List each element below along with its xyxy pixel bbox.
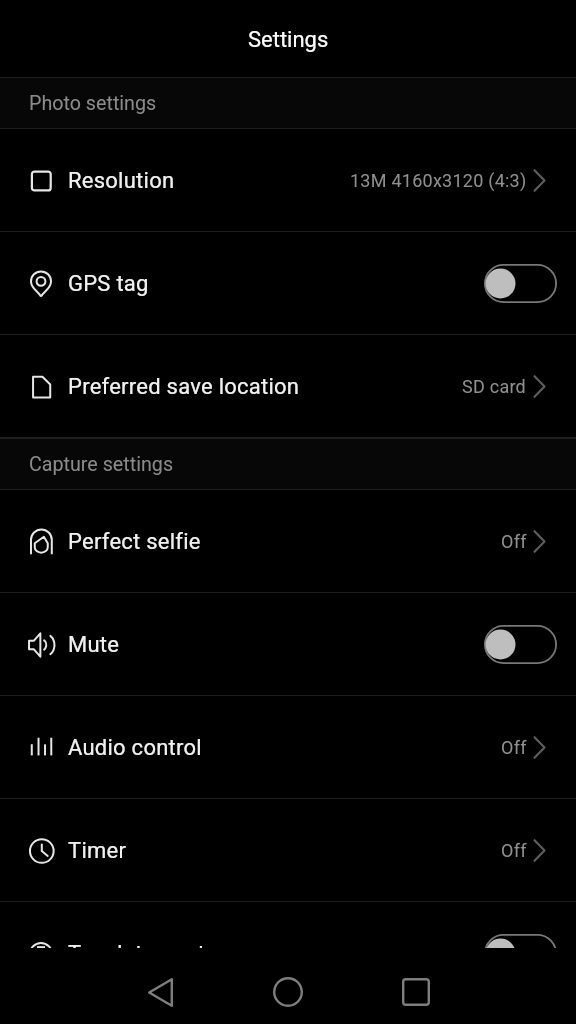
button[interactable]: Recent apps bbox=[384, 960, 448, 1024]
button[interactable]: Toggle bbox=[484, 264, 557, 303]
button[interactable]: Toggle bbox=[484, 934, 557, 948]
button[interactable]: Preferred save location bbox=[0, 335, 576, 438]
button[interactable]: Back bbox=[128, 960, 192, 1024]
button[interactable]: Perfect selfie bbox=[0, 490, 576, 593]
button[interactable]: GPS tag bbox=[0, 232, 576, 335]
staticText: Touch to capture bbox=[68, 941, 237, 948]
staticText: GPS tag bbox=[68, 271, 149, 297]
staticText: Mute bbox=[68, 632, 120, 658]
staticText: Preferred save location bbox=[68, 374, 300, 400]
staticText: Photo settings bbox=[29, 92, 157, 115]
button[interactable]: Toggle bbox=[484, 625, 557, 664]
staticText: Off bbox=[501, 737, 527, 758]
staticText: Off bbox=[501, 840, 527, 861]
button[interactable]: Touch to capture bbox=[0, 902, 576, 948]
staticText: Off bbox=[501, 531, 527, 552]
staticText: Capture settings bbox=[29, 453, 174, 476]
staticText: Resolution bbox=[68, 168, 175, 194]
staticText: Settings bbox=[248, 27, 329, 53]
button[interactable]: Timer bbox=[0, 799, 576, 902]
button[interactable]: Mute bbox=[0, 593, 576, 696]
staticText: 13M 4160x3120 (4:3) bbox=[350, 170, 527, 191]
staticText: Perfect selfie bbox=[68, 529, 201, 555]
staticText: Audio control bbox=[68, 735, 202, 761]
staticText: Timer bbox=[68, 838, 127, 864]
staticText: SD card bbox=[462, 376, 527, 397]
button[interactable]: Home bbox=[256, 960, 320, 1024]
button[interactable]: Audio control bbox=[0, 696, 576, 799]
button[interactable]: Resolution bbox=[0, 129, 576, 232]
